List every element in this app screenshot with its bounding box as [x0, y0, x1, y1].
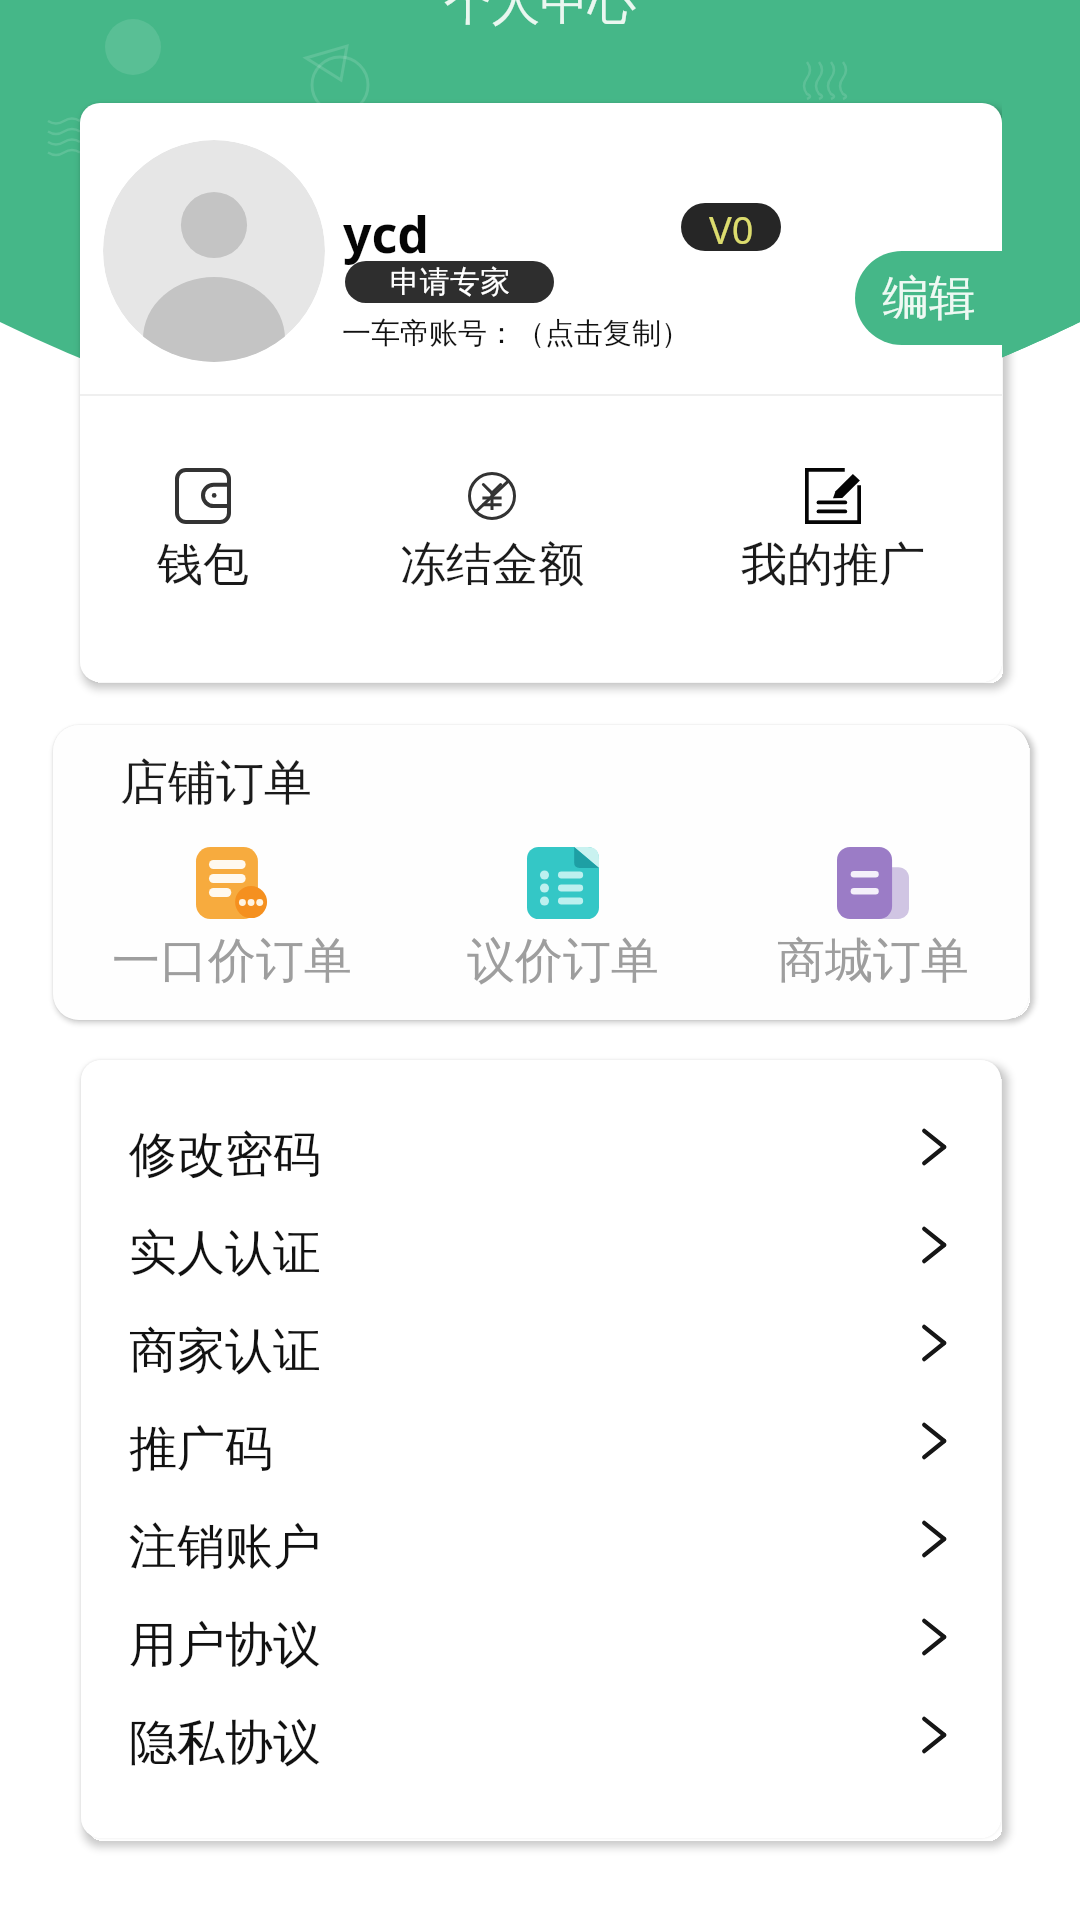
button[interactable]: 我的推广 — [693, 468, 973, 648]
staticText: 隐私协议 — [129, 1713, 321, 1773]
staticText: 商家认证 — [129, 1321, 321, 1381]
staticText: 我的推广 — [741, 536, 925, 594]
staticText: 编辑 — [882, 269, 976, 328]
button[interactable]: 用户协议 — [81, 1596, 1001, 1694]
button[interactable]: 议价订单 — [413, 847, 713, 997]
button[interactable]: 商家认证 — [81, 1302, 1001, 1400]
button[interactable]: V0 — [681, 203, 781, 251]
staticText: V0 — [709, 203, 754, 251]
staticText: 一口价订单 — [112, 931, 352, 991]
staticText: 冻结金额 — [400, 536, 584, 594]
button[interactable]: 编辑 — [855, 251, 1002, 345]
staticText: 推广码 — [129, 1419, 273, 1479]
staticText: 修改密码 — [129, 1125, 321, 1185]
staticText: 用户协议 — [129, 1615, 321, 1675]
staticText: 申请专家 — [390, 263, 510, 301]
staticText: 实人认证 — [129, 1223, 321, 1283]
staticText: 店铺订单 — [120, 753, 312, 813]
button[interactable]: 一车帝账号：（点击复制） — [342, 315, 690, 352]
button[interactable]: 申请专家 — [345, 261, 554, 303]
staticText: 商城订单 — [777, 931, 969, 991]
button[interactable]: 推广码 — [81, 1400, 1001, 1498]
button[interactable]: 实人认证 — [81, 1204, 1001, 1302]
button[interactable]: 注销账户 — [81, 1498, 1001, 1596]
button[interactable]: 冻结金额 — [352, 468, 632, 648]
staticText: ycd — [343, 200, 429, 268]
button[interactable]: 钱包 — [80, 468, 343, 648]
button[interactable]: 修改密码 — [81, 1106, 1001, 1204]
staticText: 个人中心 — [444, 0, 636, 33]
button[interactable]: 商城订单 — [723, 847, 1023, 997]
staticText: 钱包 — [157, 536, 249, 594]
button[interactable]: Profile photo — [103, 140, 325, 362]
staticText: 注销账户 — [129, 1517, 321, 1577]
button[interactable]: 隐私协议 — [81, 1694, 1001, 1792]
staticText: 议价订单 — [467, 931, 659, 991]
button[interactable]: 一口价订单 — [82, 847, 382, 997]
